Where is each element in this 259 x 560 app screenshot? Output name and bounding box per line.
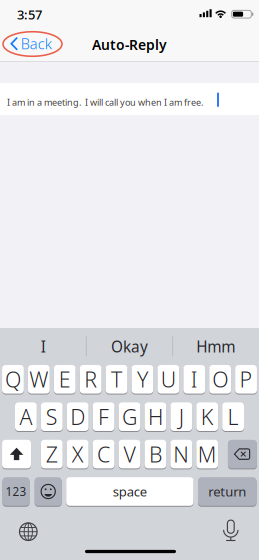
button[interactable]: Dictate [217,515,245,545]
staticText: I [41,336,46,357]
button[interactable]: B [144,440,166,468]
button[interactable]: F [93,402,114,431]
button[interactable]: R [80,365,101,394]
staticText: T [111,365,122,394]
staticText: P [239,365,252,394]
button[interactable]: T [106,365,127,394]
staticText: M [198,440,217,469]
staticText: V [123,440,135,469]
button[interactable]: D [67,402,89,431]
button[interactable]: space [66,477,193,506]
button[interactable]: S [41,402,63,431]
staticText: S [46,402,58,431]
staticText: return [208,483,246,500]
staticText: G [122,402,137,431]
button[interactable]: U [157,365,179,394]
staticText: Back [21,34,52,53]
button[interactable]: I [1,332,85,360]
button[interactable]: G [119,402,140,431]
button[interactable]: J [170,402,192,431]
button[interactable]: Emoji [35,477,62,506]
button[interactable]: L [222,402,244,431]
button[interactable]: V [119,440,140,468]
button[interactable]: Shift [2,440,31,468]
staticText: Hmm [196,336,235,357]
staticText: O [212,365,228,394]
staticText: X [72,440,84,469]
button[interactable]: E [54,365,76,394]
button[interactable]: O [209,365,231,394]
staticText: I [191,365,198,394]
staticText: Auto-Reply [92,35,167,54]
staticText: J [179,402,184,431]
button[interactable]: W [28,365,50,394]
button[interactable]: Hmm [174,332,258,360]
button[interactable]: K [196,402,218,431]
button[interactable]: Next keyboard [14,518,42,546]
staticText: Okay [111,336,148,357]
staticText: 123 [5,483,26,499]
button[interactable]: Delete [228,440,257,468]
button[interactable]: P [235,365,257,394]
button[interactable]: N [170,440,192,468]
button[interactable]: Back [2,31,64,57]
button[interactable]: Y [131,365,153,394]
staticText: space [113,483,147,500]
staticText: B [149,440,162,469]
staticText: H [148,402,163,431]
staticText: N [173,440,189,469]
staticText: I am in a meeting. I will call you when … [7,96,203,108]
staticText: R [84,365,97,394]
staticText: 3:57 [17,6,42,23]
staticText: C [97,440,110,469]
staticText: A [19,402,32,431]
staticText: E [59,365,71,394]
button[interactable]: X [67,440,89,468]
button[interactable]: Okay [87,332,171,360]
staticText: Y [137,365,148,394]
button[interactable]: Z [41,440,63,468]
button[interactable]: A [15,402,37,431]
staticText: K [201,402,214,431]
staticText: L [228,402,239,431]
staticText: D [70,402,85,431]
button[interactable]: 123 [2,477,29,506]
staticText: W [29,365,48,394]
button[interactable]: H [144,402,166,431]
button[interactable]: C [93,440,114,468]
staticText: U [161,365,176,394]
button[interactable]: I [183,365,205,394]
button[interactable]: Q [2,365,24,394]
button[interactable]: M [196,440,218,468]
button[interactable]: return [198,477,256,506]
staticText: Q [5,365,21,394]
staticText: Z [46,440,58,469]
staticText: F [98,402,109,431]
